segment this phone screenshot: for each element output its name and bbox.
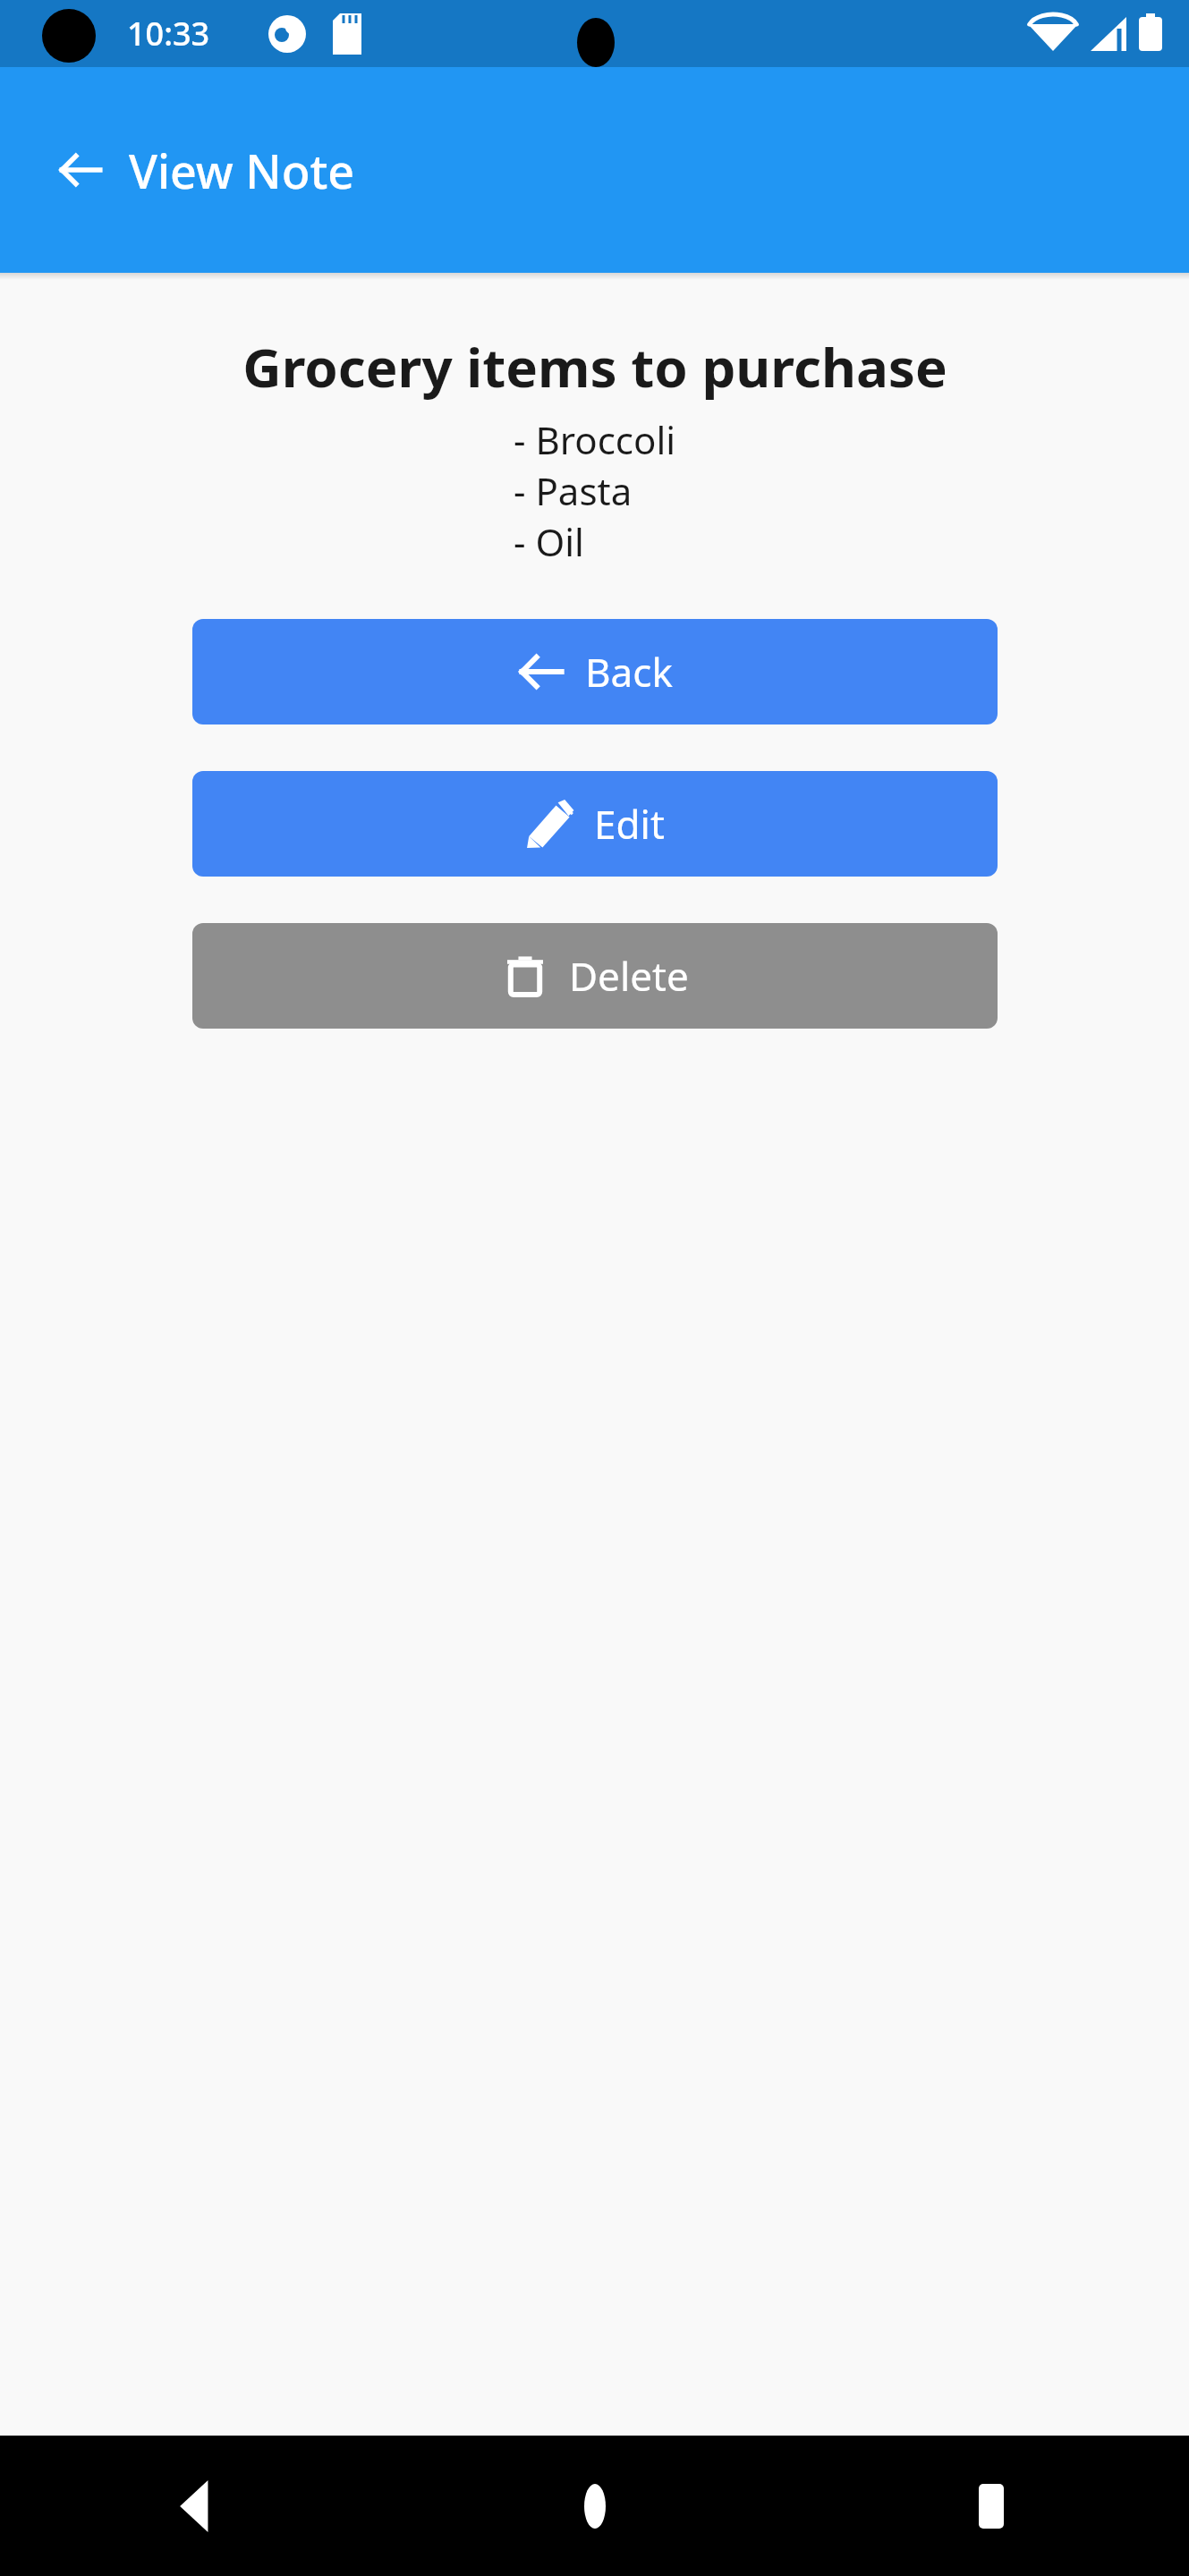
- button[interactable]: Back: [136, 2444, 261, 2569]
- staticText: Back: [585, 645, 673, 699]
- staticText: - Oil: [514, 516, 584, 567]
- button[interactable]: Back: [38, 127, 123, 213]
- button[interactable]: Home: [532, 2444, 658, 2569]
- staticText: View Note: [129, 139, 355, 202]
- button[interactable]: Edit: [192, 771, 998, 877]
- staticText: Edit: [594, 797, 665, 851]
- staticText: 10:33: [127, 12, 210, 55]
- button[interactable]: Delete: [192, 923, 998, 1029]
- button[interactable]: Recent apps: [929, 2444, 1054, 2569]
- staticText: - Pasta: [514, 465, 633, 516]
- staticText: Delete: [569, 949, 689, 1003]
- staticText: - Broccoli: [514, 414, 676, 465]
- button[interactable]: Back: [192, 619, 998, 724]
- staticText: Grocery items to purchase: [242, 330, 947, 403]
